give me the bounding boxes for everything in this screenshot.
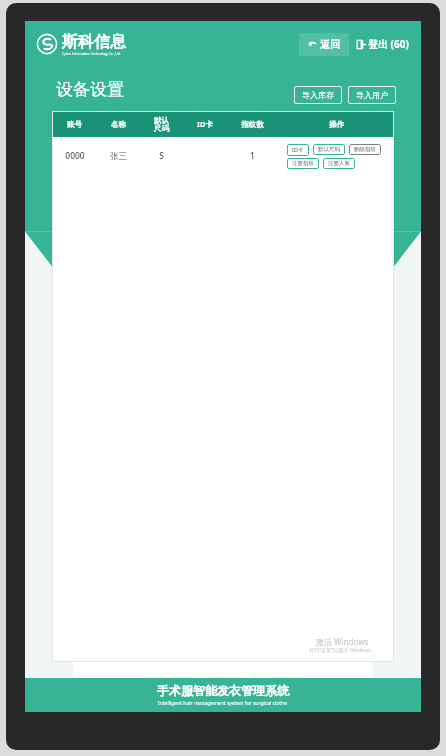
staticText: 0000 — [65, 150, 85, 162]
staticText: 注册人脸 — [328, 160, 350, 167]
staticText: 操作 — [329, 120, 344, 129]
staticText: 注册指纹 — [292, 160, 314, 167]
button[interactable]: 返回 — [299, 33, 349, 56]
staticText: Intelligent hair management system for s… — [158, 700, 288, 707]
staticText: 默认 尺码 — [154, 116, 169, 133]
staticText: 账号 — [67, 120, 82, 129]
staticText: 手术服智能发衣管理系统 — [157, 683, 289, 698]
staticText: 导入用户 — [356, 90, 388, 100]
staticText: 斯科信息 — [62, 32, 126, 52]
button[interactable]: 导入用户 — [348, 86, 396, 104]
button[interactable]: 删除指纹 — [349, 144, 381, 155]
button[interactable]: ID卡 — [287, 144, 309, 156]
button[interactable]: 导入库存 — [294, 86, 342, 104]
staticText: 转到"设置"以激活 Windows。 — [309, 647, 376, 654]
staticText: 删除指纹 — [354, 146, 376, 153]
staticText: 张三 — [110, 151, 127, 162]
button[interactable]: 登出 (60) — [357, 32, 409, 56]
staticText: 名称 — [111, 120, 126, 129]
staticText: ID卡 — [292, 146, 304, 154]
staticText: ID卡 — [197, 119, 213, 129]
staticText: 导入库存 — [302, 90, 334, 100]
button[interactable]: 注册指纹 — [287, 158, 319, 169]
staticText: 返回 — [320, 38, 340, 51]
staticText: 设备设置 — [56, 79, 124, 100]
staticText: S — [159, 150, 164, 162]
staticText: 默认尺码 — [318, 146, 340, 153]
staticText: 激活 Windows — [316, 636, 369, 647]
staticText: Cykoo Information Technology Co .,Ltd. — [62, 52, 121, 56]
staticText: 登出 (60) — [368, 37, 409, 51]
button[interactable]: 默认尺码 — [313, 144, 345, 155]
button[interactable]: 注册人脸 — [323, 158, 355, 169]
staticText: 1 — [250, 150, 255, 162]
staticText: 指纹数 — [241, 120, 264, 129]
